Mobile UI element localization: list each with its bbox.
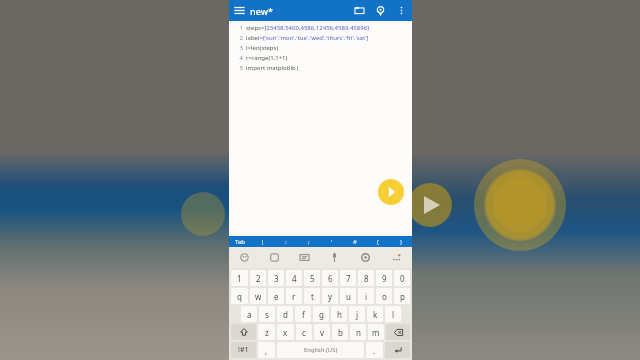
button[interactable]: r — [286, 288, 302, 304]
button[interactable]: 6 — [322, 270, 338, 286]
staticText: u — [346, 291, 351, 302]
button[interactable]: p — [394, 288, 410, 304]
button[interactable]: More — [381, 247, 412, 268]
button[interactable]: k — [367, 306, 383, 322]
button[interactable]: h — [331, 306, 347, 322]
button[interactable]: t — [304, 288, 320, 304]
button[interactable]: 7 — [340, 270, 356, 286]
staticText: , — [265, 345, 268, 356]
button[interactable]: ; — [297, 236, 320, 247]
staticText: f — [302, 309, 305, 320]
button[interactable]: ( — [366, 236, 389, 247]
staticText: | — [261, 238, 265, 246]
staticText: 9 — [382, 273, 387, 284]
button[interactable]: ) — [389, 236, 412, 247]
button[interactable]: : — [274, 236, 297, 247]
button[interactable]: 0 — [394, 270, 410, 286]
button[interactable]: GIF — [289, 247, 319, 268]
button[interactable]: Settings — [350, 247, 381, 268]
button[interactable]: m — [368, 324, 384, 340]
button[interactable]: Tab — [229, 236, 251, 247]
button[interactable]: q — [231, 288, 248, 304]
staticText: w — [255, 291, 262, 302]
staticText: x — [283, 327, 288, 338]
button[interactable]: y — [322, 288, 338, 304]
button[interactable]: Enter — [385, 342, 410, 358]
staticText: ; — [308, 238, 310, 246]
staticText: 1 — [237, 273, 242, 284]
button[interactable]: 1 — [231, 270, 248, 286]
button[interactable]: Shift — [231, 324, 256, 340]
button[interactable]: . — [366, 342, 383, 358]
staticText: steps=[23458,5400,4586,12456,4589,45896] — [246, 24, 370, 32]
button[interactable]: f — [295, 306, 311, 322]
button[interactable]: e — [268, 288, 284, 304]
button[interactable]: d — [277, 306, 293, 322]
button[interactable]: Emoji — [229, 247, 259, 268]
button[interactable]: w — [250, 288, 266, 304]
button[interactable]: , — [258, 342, 275, 358]
staticText: z — [265, 327, 269, 338]
staticText: a — [247, 309, 252, 320]
button[interactable]: ' — [320, 236, 343, 247]
button[interactable]: a — [241, 306, 257, 322]
staticText: 0 — [400, 273, 405, 284]
staticText: q — [237, 291, 242, 302]
button[interactable]: 2 — [250, 270, 266, 286]
button[interactable]: s — [259, 306, 275, 322]
button[interactable]: c — [296, 324, 312, 340]
staticText: ' — [331, 238, 333, 246]
button[interactable]: l — [385, 306, 401, 322]
staticText: g — [319, 309, 324, 320]
button[interactable]: x — [277, 324, 294, 340]
button[interactable]: More options — [391, 0, 412, 21]
button[interactable]: 4 — [286, 270, 302, 286]
button[interactable]: 8 — [358, 270, 374, 286]
staticText: 2 — [256, 273, 261, 284]
button[interactable]: | — [251, 236, 274, 247]
button[interactable]: Menu — [229, 0, 250, 21]
staticText: 4 — [229, 54, 243, 62]
button[interactable]: v — [314, 324, 330, 340]
button[interactable]: # — [343, 236, 366, 247]
staticText: l=len(steps) — [246, 44, 279, 52]
staticText: Tab — [235, 238, 245, 246]
staticText: i — [365, 291, 368, 302]
staticText: 3 — [229, 44, 243, 52]
button[interactable]: Voice input — [319, 247, 350, 268]
button[interactable]: Open folder — [349, 0, 370, 21]
staticText: ( — [377, 238, 379, 246]
staticText: 8 — [364, 273, 369, 284]
staticText: l — [392, 309, 395, 320]
button[interactable]: !#1 — [231, 342, 256, 358]
button[interactable]: i — [358, 288, 374, 304]
button[interactable]: 9 — [376, 270, 392, 286]
staticText: label=['sun','mon','tue','wed','thurs','… — [246, 34, 369, 42]
staticText: import matplotlib| — [246, 64, 299, 72]
button[interactable]: Sticker — [259, 247, 289, 268]
staticText: y — [328, 291, 333, 302]
staticText: ) — [400, 238, 402, 246]
button[interactable]: b — [332, 324, 348, 340]
staticText: 5 — [229, 64, 243, 72]
button[interactable]: j — [349, 306, 365, 322]
staticText: o — [382, 291, 387, 302]
staticText: r=range(1,1+1) — [246, 54, 288, 62]
button[interactable]: o — [376, 288, 392, 304]
staticText: . — [373, 345, 376, 356]
button[interactable]: u — [340, 288, 356, 304]
button[interactable]: English (US) — [277, 342, 364, 358]
staticText: m — [372, 327, 380, 338]
button[interactable]: z — [258, 324, 275, 340]
staticText: # — [353, 238, 357, 246]
button[interactable]: Backspace — [386, 324, 410, 340]
button[interactable]: n — [350, 324, 366, 340]
button[interactable]: 3 — [268, 270, 284, 286]
button[interactable]: Run — [378, 179, 404, 205]
button[interactable]: 5 — [304, 270, 320, 286]
button[interactable]: Location — [370, 0, 391, 21]
staticText: : — [285, 238, 287, 246]
staticText: v — [320, 327, 325, 338]
staticText: new* — [250, 5, 273, 17]
button[interactable]: g — [313, 306, 329, 322]
